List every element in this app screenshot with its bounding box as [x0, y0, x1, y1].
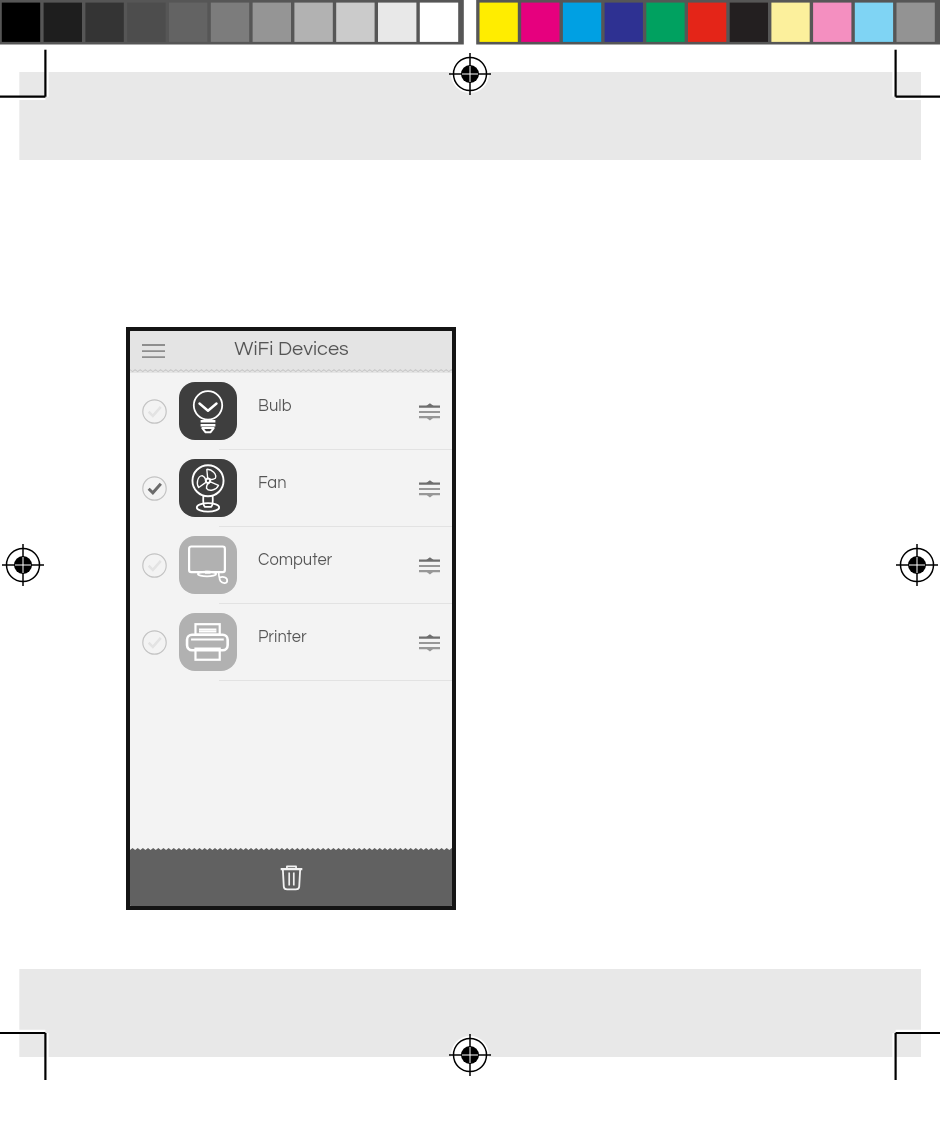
- button[interactable]: Printer: [130, 604, 452, 681]
- staticText: Printer: [258, 628, 307, 645]
- staticText: Computer: [258, 551, 333, 568]
- button[interactable]: Adjust Bulb: [410, 393, 448, 431]
- button[interactable]: Adjust Fan: [410, 470, 448, 508]
- button[interactable]: Fan: [130, 450, 452, 527]
- button[interactable]: Computer: [130, 527, 452, 604]
- button[interactable]: Adjust Printer: [410, 624, 448, 662]
- button[interactable]: Adjust Computer: [410, 547, 448, 585]
- staticText: Fan: [258, 474, 287, 491]
- button[interactable]: Delete: [271, 857, 311, 897]
- button[interactable]: Menu: [136, 334, 170, 368]
- staticText: WiFi Devices: [234, 339, 349, 360]
- button[interactable]: Bulb: [130, 373, 452, 450]
- staticText: Bulb: [258, 397, 292, 414]
